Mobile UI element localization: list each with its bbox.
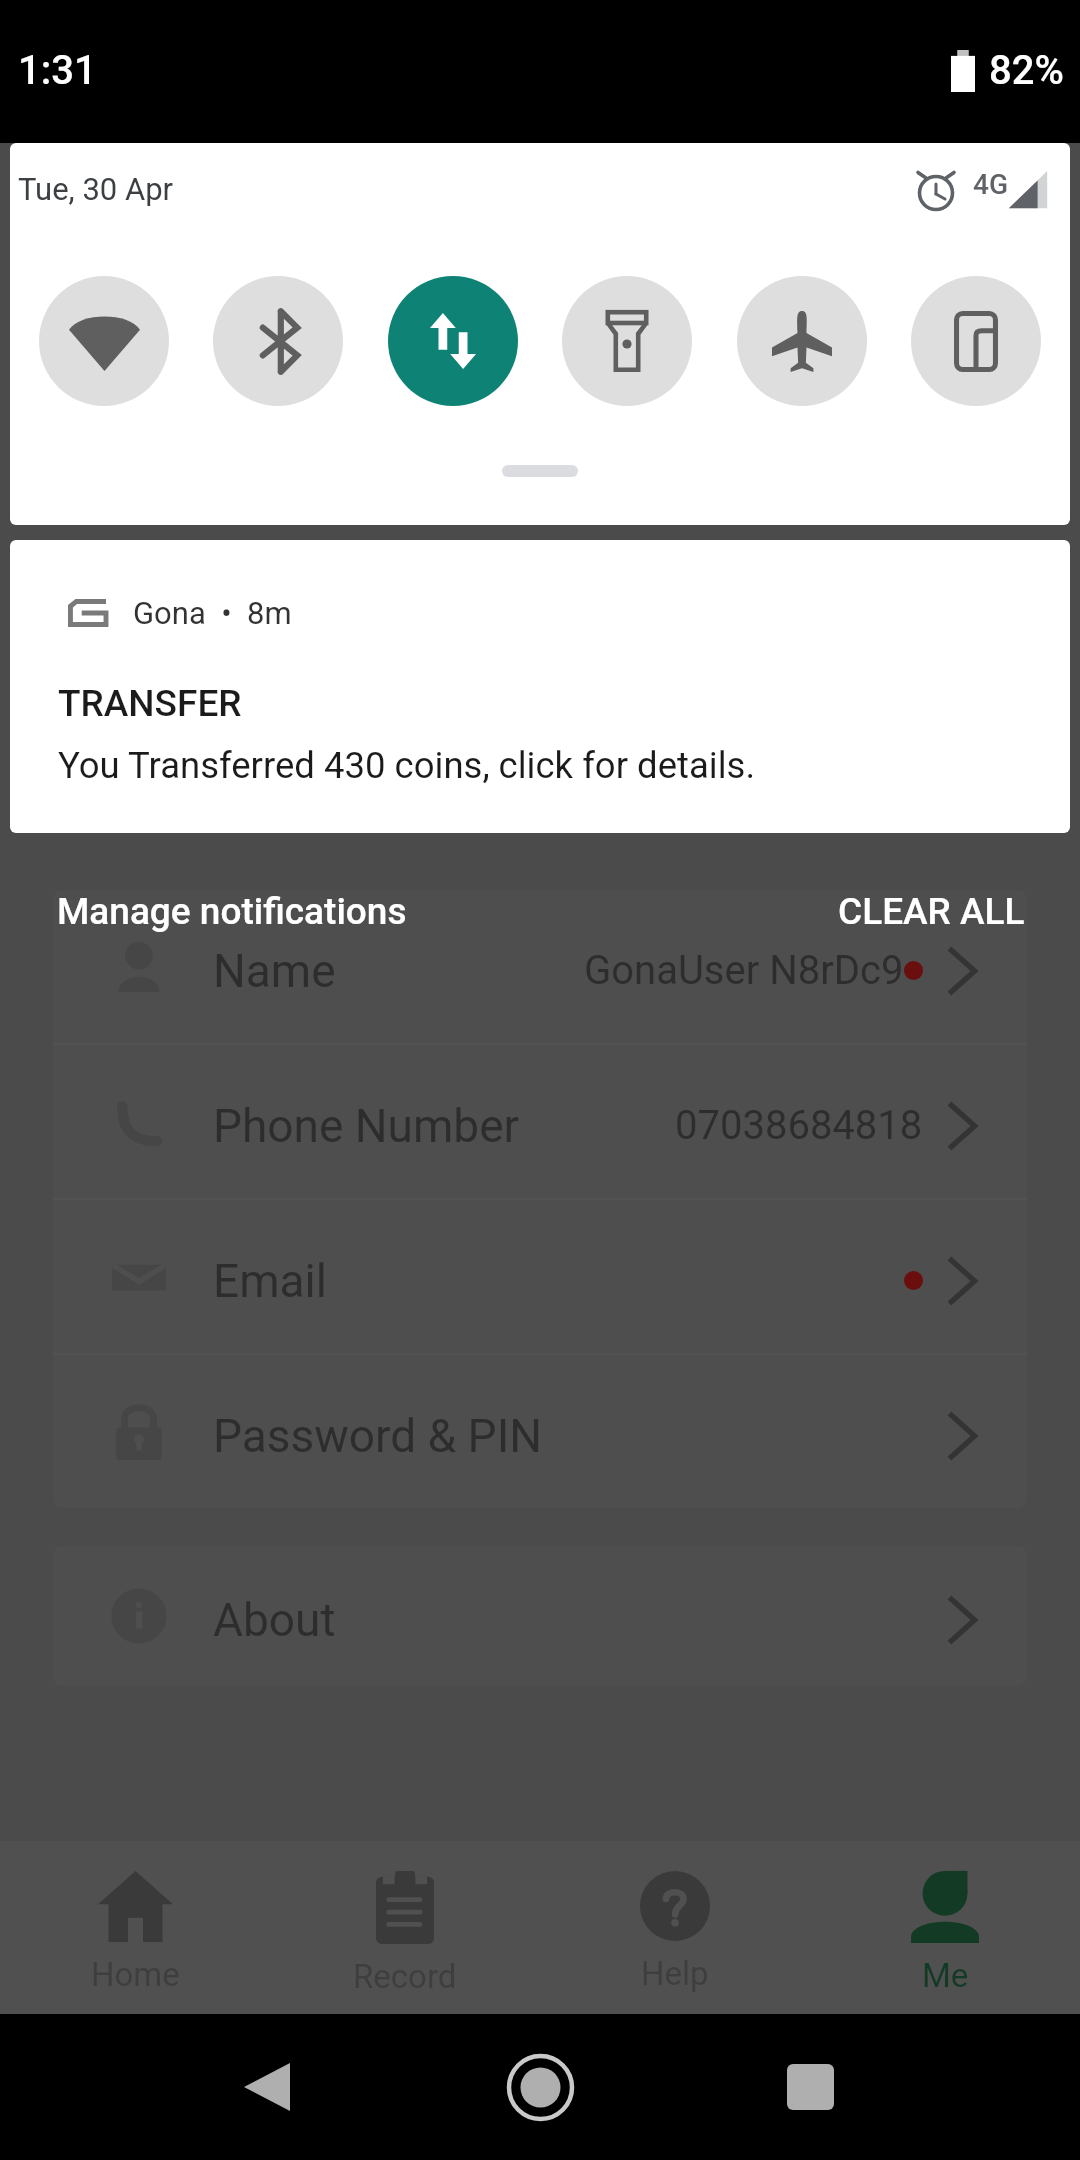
staticText: GonaUser N8rDc9 xyxy=(584,947,904,994)
button[interactable]: Home xyxy=(0,1841,270,2014)
button[interactable]: Record xyxy=(270,1841,540,2014)
staticText: Email xyxy=(213,1254,327,1308)
button[interactable]: Gona • 8m xyxy=(10,540,1070,833)
button[interactable]: Home xyxy=(480,2032,600,2142)
button[interactable]: Airplane mode xyxy=(737,276,867,406)
button[interactable]: CLEAR ALL xyxy=(838,890,1025,933)
button[interactable]: Help xyxy=(540,1841,810,2014)
staticText: Tue, 30 Apr xyxy=(18,171,174,207)
button[interactable]: Recents xyxy=(750,2032,870,2142)
staticText: Me xyxy=(922,1956,969,1995)
staticText: CLEAR ALL xyxy=(838,890,1025,933)
button[interactable]: Wi-Fi xyxy=(39,276,169,406)
staticText: Home xyxy=(91,1955,180,1994)
button[interactable]: Password & PIN xyxy=(53,1355,1027,1508)
button[interactable]: Phone Number xyxy=(53,1045,1027,1198)
staticText: You Transferred 430 coins, click for det… xyxy=(58,744,756,787)
button[interactable]: Manage notifications xyxy=(57,890,407,933)
staticText: 82% xyxy=(989,47,1064,94)
staticText: 1:31 xyxy=(18,47,97,94)
staticText: Password & PIN xyxy=(213,1409,542,1463)
button[interactable]: Name xyxy=(53,890,1027,1043)
staticText: Name xyxy=(213,944,336,998)
staticText: Record xyxy=(353,1957,457,1996)
button[interactable]: Back xyxy=(207,2032,327,2142)
button[interactable]: Email xyxy=(53,1200,1027,1353)
staticText: Gona • 8m xyxy=(133,595,292,631)
staticText: About xyxy=(213,1593,336,1647)
staticText: 4G xyxy=(973,168,1008,201)
button[interactable]: Bluetooth xyxy=(213,276,343,406)
button[interactable]: Mobile data xyxy=(388,276,518,406)
staticText: Manage notifications xyxy=(57,890,407,933)
button[interactable]: Auto rotate xyxy=(911,276,1041,406)
staticText: 07038684818 xyxy=(675,1102,923,1149)
staticText: Help xyxy=(641,1954,709,1993)
staticText: TRANSFER xyxy=(58,682,242,725)
button[interactable]: About xyxy=(53,1546,1027,1686)
staticText: Phone Number xyxy=(213,1099,520,1153)
button[interactable]: Flashlight xyxy=(562,276,692,406)
button[interactable]: Me xyxy=(810,1841,1080,2014)
